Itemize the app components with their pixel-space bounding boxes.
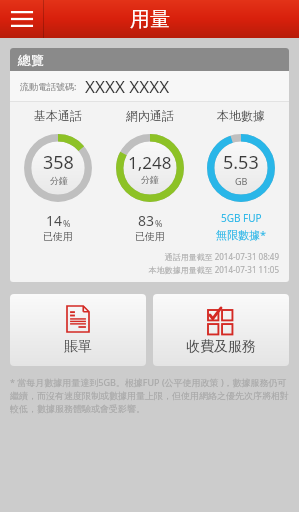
staticText: 網內通話 bbox=[126, 108, 174, 123]
staticText: 已使用 bbox=[135, 230, 165, 243]
staticText: 分鐘 bbox=[50, 175, 68, 186]
staticText: 總覽 bbox=[18, 52, 44, 68]
staticText: 收費及服務 bbox=[186, 338, 256, 356]
staticText: 已使用 bbox=[43, 230, 73, 243]
staticText: 用量 bbox=[130, 7, 170, 32]
button[interactable]: 賬單 bbox=[10, 294, 146, 366]
button[interactable]: 收費及服務 bbox=[153, 294, 289, 366]
staticText: * 當每月數據用量達到5GB。根據FUP (公平使用政策 )，數據服務仍可繼續，… bbox=[10, 376, 289, 414]
staticText: 本地數據 bbox=[217, 108, 265, 123]
staticText: 賬單 bbox=[64, 338, 92, 356]
staticText: 分鐘 bbox=[141, 174, 159, 185]
staticText: 本地數據用量截至 2014-07-31 11:05 bbox=[148, 264, 279, 275]
staticText: % bbox=[63, 217, 71, 229]
staticText: 5.53 bbox=[223, 150, 259, 175]
staticText: 基本通話 bbox=[34, 108, 82, 123]
staticText: GB bbox=[235, 175, 248, 187]
staticText: 83 bbox=[138, 211, 155, 230]
staticText: 5GB FUP bbox=[221, 211, 262, 225]
staticText: XXXX XXXX bbox=[85, 75, 170, 98]
staticText: % bbox=[155, 217, 163, 229]
staticText: 無限數據* bbox=[216, 227, 267, 242]
staticText: 358 bbox=[43, 150, 74, 175]
staticText: 通話用量截至 2014-07-31 08:49 bbox=[164, 251, 279, 262]
staticText: 14 bbox=[46, 211, 63, 230]
staticText: 流動電話號碼: bbox=[20, 80, 77, 92]
button[interactable]: Menu bbox=[0, 0, 43, 38]
staticText: 1,248 bbox=[128, 151, 172, 174]
